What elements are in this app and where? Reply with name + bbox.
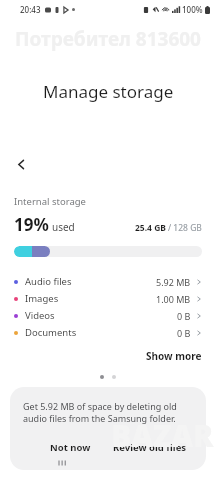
staticText: Documents	[25, 326, 77, 339]
staticText: 0 B	[177, 327, 191, 339]
staticText: 100%	[182, 4, 203, 15]
staticText: used	[52, 220, 75, 234]
button[interactable]: Not now	[44, 438, 97, 457]
staticText: Потребител 813600	[15, 26, 201, 52]
staticText: 5.92 MB	[156, 276, 191, 288]
staticText: Videos	[25, 309, 55, 322]
staticText: Images	[25, 292, 59, 305]
staticText: Internal storage	[14, 195, 86, 208]
button[interactable]: Audio files	[0, 273, 216, 290]
staticText: 1.00 MB	[156, 293, 191, 305]
button[interactable]: Images	[0, 290, 216, 307]
staticText: Review old files	[113, 441, 187, 454]
button[interactable]: Review old files	[107, 438, 193, 457]
staticText: Manage storage	[43, 80, 174, 103]
staticText: Get 5.92 MB of space by deleting old aud…	[23, 400, 193, 425]
button[interactable]: Videos	[0, 307, 216, 324]
button[interactable]: Recents	[52, 452, 74, 474]
staticText: / 128 GB	[168, 222, 202, 234]
button[interactable]: Show more	[132, 345, 216, 367]
button[interactable]: Back	[8, 151, 34, 177]
staticText: Not now	[50, 441, 91, 454]
staticText: Show more	[146, 349, 202, 363]
staticText: 25.4 GB	[135, 222, 166, 234]
staticText: 19%	[14, 213, 49, 236]
staticText: BAZAR	[111, 415, 214, 456]
staticText: 0 B	[177, 310, 191, 322]
staticText: Audio files	[25, 275, 72, 288]
staticText: 20:43	[20, 4, 41, 15]
button[interactable]: Documents	[0, 324, 216, 341]
